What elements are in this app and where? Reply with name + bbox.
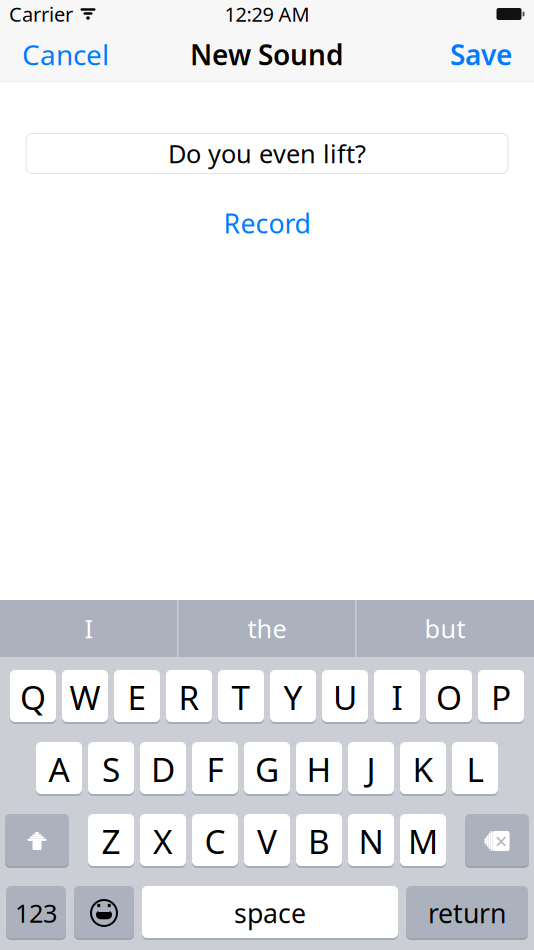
staticText: return	[428, 895, 506, 931]
staticText: A	[48, 747, 69, 791]
button[interactable]: W	[62, 670, 108, 724]
staticText: W	[69, 675, 100, 719]
staticText: Save	[450, 36, 512, 73]
staticText: ×	[495, 827, 507, 855]
button[interactable]: 123	[6, 886, 66, 940]
staticText: H	[306, 747, 331, 791]
staticText: New Sound	[190, 36, 344, 73]
staticText: Q	[20, 675, 46, 719]
button[interactable]: I	[374, 670, 420, 724]
button[interactable]: D	[140, 742, 186, 796]
button[interactable]: M	[400, 814, 446, 868]
button[interactable]: U	[322, 670, 368, 724]
button[interactable]: H	[296, 742, 342, 796]
button[interactable]: space	[142, 886, 398, 940]
button[interactable]: L	[452, 742, 498, 796]
button[interactable]: G	[244, 742, 290, 796]
button[interactable]: T	[218, 670, 264, 724]
staticText: Y	[283, 675, 302, 719]
staticText: R	[178, 675, 199, 719]
staticText: Z	[101, 819, 120, 863]
staticText: G	[255, 747, 279, 791]
button[interactable]: Save	[438, 27, 524, 82]
staticText: E	[127, 675, 146, 719]
button[interactable]: N	[348, 814, 394, 868]
staticText: C	[204, 819, 225, 863]
button[interactable]: K	[400, 742, 446, 796]
staticText: P	[491, 675, 511, 719]
button[interactable]: Shift	[5, 814, 69, 868]
button[interactable]: Z	[88, 814, 134, 868]
staticText: I	[84, 612, 93, 645]
staticText: L	[466, 747, 483, 791]
button[interactable]: E	[114, 670, 160, 724]
staticText: 123	[15, 896, 57, 930]
button[interactable]: but	[356, 600, 533, 657]
staticText: V	[257, 819, 277, 863]
button[interactable]: Cancel	[10, 27, 121, 82]
staticText: Carrier	[9, 1, 73, 27]
staticText: M	[408, 819, 438, 863]
button[interactable]: I	[0, 600, 177, 657]
staticText: K	[412, 747, 433, 791]
button[interactable]: P	[478, 670, 524, 724]
button[interactable]: F	[192, 742, 238, 796]
button[interactable]: A	[36, 742, 82, 796]
button[interactable]: X	[140, 814, 186, 868]
button[interactable]: Emoji keyboard	[74, 886, 134, 940]
staticText: O	[436, 675, 462, 719]
button[interactable]: Q	[10, 670, 56, 724]
staticText: F	[206, 747, 223, 791]
button[interactable]: the	[178, 600, 355, 657]
staticText: Do you even lift?	[168, 137, 366, 170]
button[interactable]: S	[88, 742, 134, 796]
staticText: N	[358, 819, 383, 863]
staticText: Record	[223, 205, 310, 241]
staticText: B	[308, 819, 330, 863]
staticText: Cancel	[22, 36, 109, 73]
button[interactable]: O	[426, 670, 472, 724]
button[interactable]: Delete	[465, 814, 529, 868]
staticText: D	[151, 747, 175, 791]
staticText: U	[333, 675, 357, 719]
staticText: the	[247, 612, 286, 645]
button[interactable]: Record	[205, 198, 328, 248]
staticText: X	[153, 819, 173, 863]
staticText: space	[234, 895, 306, 931]
staticText: S	[102, 747, 120, 791]
staticText: but	[424, 612, 465, 645]
button[interactable]: return	[406, 886, 528, 940]
button[interactable]: J	[348, 742, 394, 796]
button[interactable]: V	[244, 814, 290, 868]
staticText: J	[366, 747, 375, 791]
staticText: I	[391, 675, 402, 719]
staticText: T	[231, 675, 250, 719]
button[interactable]: R	[166, 670, 212, 724]
button[interactable]: B	[296, 814, 342, 868]
button[interactable]: C	[192, 814, 238, 868]
staticText: 12:29 AM	[224, 1, 309, 27]
button[interactable]: Y	[270, 670, 316, 724]
